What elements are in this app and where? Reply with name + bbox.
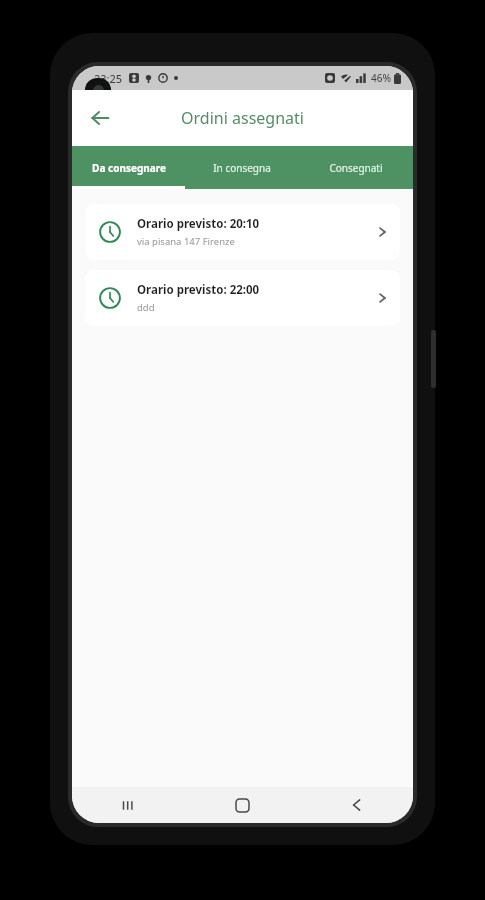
staticText: ddd <box>137 301 155 314</box>
staticText: via pisana 147 Firenze <box>137 235 235 248</box>
staticText: In consegna <box>213 161 271 175</box>
button[interactable]: Indietro <box>78 96 122 140</box>
staticText: Da consegnare <box>92 161 166 175</box>
button[interactable]: Orario previsto: 22:00 <box>85 270 400 326</box>
staticText: Consegnati <box>329 161 383 175</box>
button[interactable]: Indietro <box>299 787 413 823</box>
button[interactable]: Orario previsto: 20:10 <box>85 204 400 260</box>
staticText: Orario previsto: 20:10 <box>137 216 260 232</box>
staticText: Ordini assegnati <box>181 107 304 129</box>
button[interactable]: Consegnati <box>299 146 413 189</box>
button[interactable]: Da consegnare <box>72 146 185 189</box>
staticText: Orario previsto: 22:00 <box>137 282 260 298</box>
button[interactable]: In consegna <box>185 146 299 189</box>
button[interactable]: Home <box>185 787 299 823</box>
staticText: 23:25 <box>94 71 123 86</box>
staticText: 46% <box>371 71 391 85</box>
button[interactable]: Recenti <box>72 787 185 823</box>
